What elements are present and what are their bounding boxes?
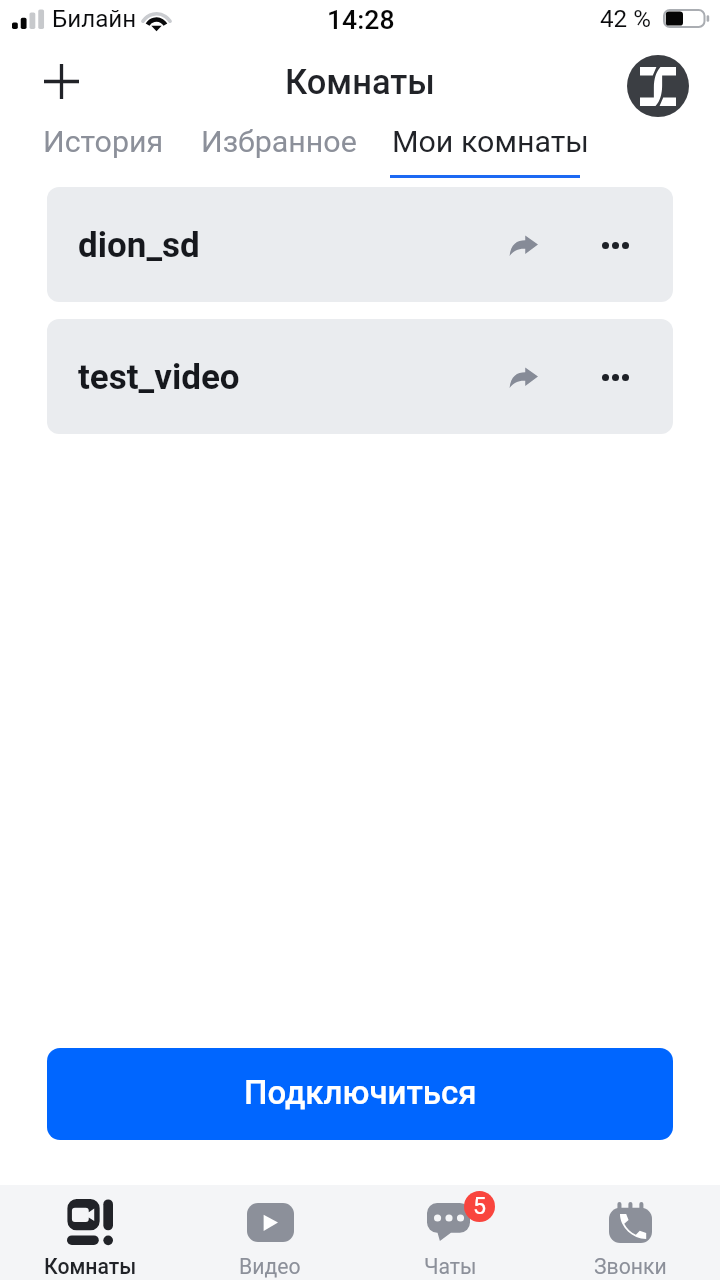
button[interactable]: Подключиться (47, 1048, 673, 1140)
staticText: Подключиться (244, 1073, 477, 1112)
staticText: 14:28 (327, 4, 395, 35)
button[interactable]: Create room (29, 49, 93, 113)
staticText: dion_sd (78, 225, 200, 266)
staticText: Избранное (201, 124, 357, 160)
button[interactable]: test_video (47, 319, 673, 434)
staticText: Мои комнаты (392, 124, 589, 160)
staticText: Видео (239, 1254, 301, 1279)
button[interactable]: Share (497, 219, 549, 271)
button[interactable]: More options (589, 219, 641, 271)
button[interactable]: История (39, 106, 168, 178)
button[interactable]: Share (497, 351, 549, 403)
button[interactable]: Мои комнаты (388, 106, 593, 178)
button[interactable]: Звонки (540, 1185, 720, 1280)
staticText: test_video (78, 357, 240, 398)
button[interactable]: Комнаты (0, 1185, 180, 1280)
staticText: Комнаты (285, 62, 435, 102)
button[interactable]: 5 (360, 1185, 540, 1280)
staticText: Звонки (594, 1254, 667, 1279)
staticText: Чаты (424, 1254, 477, 1279)
button[interactable]: Видео (180, 1185, 360, 1280)
button[interactable]: dion_sd (47, 187, 673, 302)
staticText: История (43, 124, 164, 160)
staticText: Билайн (52, 5, 137, 33)
staticText: 5 (473, 1192, 487, 1219)
staticText: 42 % (600, 5, 651, 33)
button[interactable]: Избранное (197, 106, 361, 178)
button[interactable]: More options (589, 351, 641, 403)
staticText: Комнаты (44, 1254, 137, 1279)
button[interactable]: Profile (627, 55, 689, 117)
